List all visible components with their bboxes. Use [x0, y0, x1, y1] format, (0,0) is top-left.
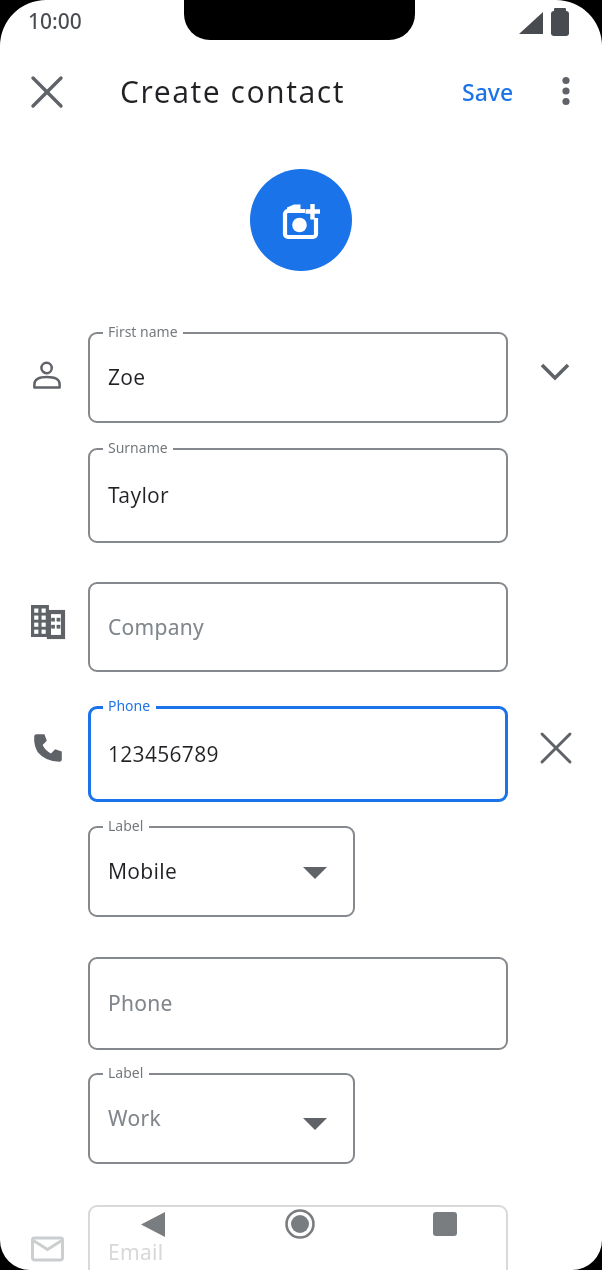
button[interactable]	[535, 351, 575, 391]
button[interactable]	[250, 169, 352, 271]
staticText: Company	[108, 613, 205, 642]
button[interactable]: Work	[88, 1073, 355, 1164]
staticText: Email	[108, 1238, 164, 1267]
button[interactable]: Email	[88, 1205, 508, 1270]
staticText: 123456789	[108, 740, 219, 769]
button[interactable]: 123456789	[88, 706, 508, 802]
button[interactable]	[548, 72, 584, 110]
staticText: Create contact	[120, 71, 346, 112]
button[interactable]	[420, 1199, 470, 1249]
button[interactable]	[275, 1199, 325, 1249]
button[interactable]: Zoe	[88, 332, 508, 423]
staticText: Zoe	[108, 363, 146, 392]
staticText: Surname	[108, 438, 168, 457]
button[interactable]	[536, 728, 576, 768]
button[interactable]	[128, 1199, 178, 1249]
staticText: Label	[108, 816, 144, 835]
staticText: Taylor	[108, 481, 170, 510]
staticText: Save	[462, 76, 514, 107]
staticText: First name	[108, 322, 178, 341]
staticText: 10:00	[28, 7, 82, 36]
staticText: Phone	[108, 989, 173, 1018]
staticText: Phone	[108, 696, 151, 715]
button[interactable]: Company	[88, 582, 508, 672]
staticText: Mobile	[108, 857, 178, 886]
staticText: Work	[108, 1104, 161, 1133]
button[interactable]: Phone	[88, 957, 508, 1050]
button[interactable]	[29, 74, 65, 110]
button[interactable]: Mobile	[88, 826, 355, 917]
button[interactable]: Taylor	[88, 448, 508, 543]
button[interactable]: Save	[452, 72, 524, 110]
staticText: Label	[108, 1063, 144, 1082]
